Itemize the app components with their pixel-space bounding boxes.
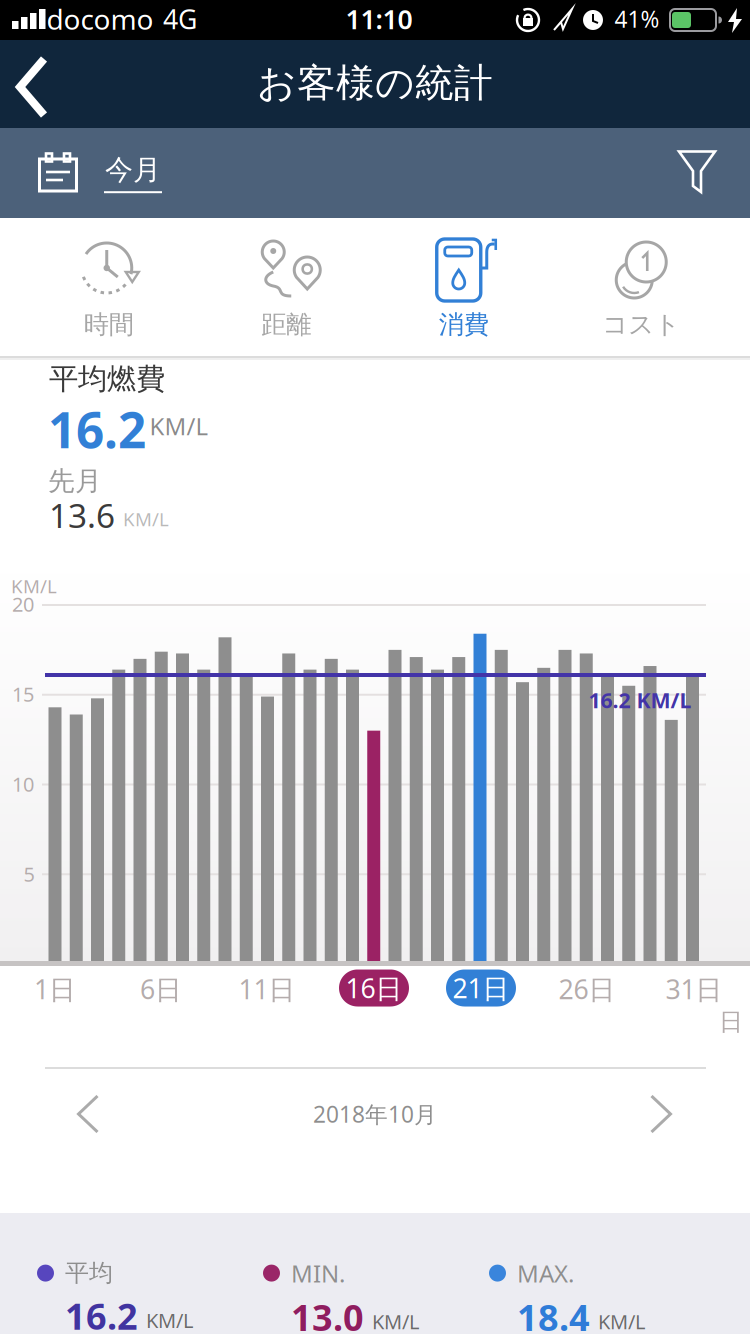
button[interactable]: Back <box>10 51 56 123</box>
staticText: docomo <box>46 0 153 38</box>
staticText: KM/L <box>146 1307 193 1334</box>
button[interactable]: Previous month <box>76 1094 99 1134</box>
staticText: 16.2 <box>65 1292 138 1334</box>
staticText: 消費 <box>439 309 489 340</box>
staticText: MAX. <box>517 1257 574 1289</box>
button[interactable]: Filter <box>678 150 718 196</box>
staticText: コスト <box>602 309 680 340</box>
staticText: 16日 <box>345 970 402 1006</box>
staticText: 20 <box>12 591 34 617</box>
staticText: 11:10 <box>345 1 412 37</box>
staticText: 6日 <box>140 971 182 1007</box>
staticText: 41% <box>614 4 659 34</box>
staticText: 13.0 <box>291 1293 364 1334</box>
staticText: お客様の統計 <box>257 59 493 107</box>
staticText: 平均燃費 <box>49 361 165 397</box>
button[interactable]: 時間 <box>20 218 197 356</box>
button[interactable]: コスト <box>552 218 730 356</box>
button[interactable]: 16日 <box>339 969 409 1006</box>
staticText: 距離 <box>261 309 311 340</box>
button[interactable]: Next month <box>649 1094 672 1134</box>
staticText: KM/L <box>372 1308 419 1334</box>
staticText: 時間 <box>84 309 134 340</box>
button[interactable]: 距離 <box>197 218 375 356</box>
staticText: 13.6 <box>49 493 115 537</box>
staticText: 16.2 <box>48 396 146 462</box>
staticText: 2018年10月 <box>313 1099 437 1129</box>
staticText: KM/L <box>149 410 208 442</box>
button[interactable]: 21日 <box>446 969 516 1006</box>
staticText: 1日 <box>34 971 76 1007</box>
staticText: 10 <box>12 771 34 797</box>
staticText: 16.2 KM/L <box>588 686 691 714</box>
staticText: 先月 <box>48 465 102 497</box>
staticText: 15 <box>12 681 34 707</box>
staticText: KM/L <box>598 1308 645 1334</box>
button[interactable]: 今月 <box>38 153 162 193</box>
staticText: 日 <box>719 1007 743 1037</box>
staticText: KM/L <box>123 507 169 531</box>
staticText: 26日 <box>558 971 615 1007</box>
staticText: 4G <box>163 1 197 37</box>
staticText: 今月 <box>105 153 161 187</box>
staticText: 平均 <box>65 1258 113 1288</box>
staticText: 5 <box>23 861 34 887</box>
staticText: 11日 <box>238 971 295 1007</box>
staticText: 31日 <box>665 971 722 1007</box>
staticText: 18.4 <box>517 1293 590 1334</box>
staticText: 21日 <box>452 970 509 1006</box>
button[interactable]: 消費 <box>375 218 552 356</box>
staticText: KM/L <box>11 574 57 598</box>
staticText: MIN. <box>291 1257 345 1289</box>
